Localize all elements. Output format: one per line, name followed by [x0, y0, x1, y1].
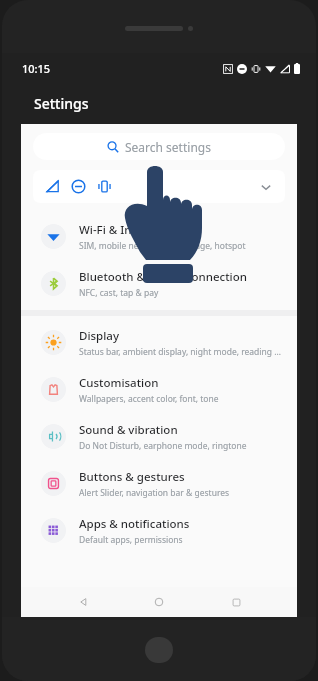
other: Airplane mode	[45, 179, 60, 194]
staticText: Buttons & gestures	[79, 469, 185, 485]
other: Vibrate	[97, 179, 112, 194]
other: Do not disturb	[71, 179, 86, 194]
button[interactable]: Airplane mode	[33, 170, 285, 203]
button[interactable]: Display	[21, 319, 297, 366]
button[interactable]: Wi-Fi & Internet	[21, 213, 297, 260]
button[interactable]: Back	[68, 587, 98, 617]
staticText: Settings	[34, 94, 89, 113]
staticText: Search settings	[125, 139, 211, 155]
button[interactable]: Buttons & gestures	[21, 460, 297, 507]
button[interactable]: Home	[144, 587, 174, 617]
staticText: 10:15	[22, 61, 51, 76]
staticText: Sound & vibration	[79, 422, 178, 438]
button[interactable]: Bluetooth & device connection	[21, 260, 297, 307]
staticText: Wi-Fi & Internet	[79, 222, 166, 238]
other: Expand	[259, 180, 273, 194]
button[interactable]: Apps & notifications	[21, 507, 297, 554]
staticText: Alert Slider, navigation bar & gestures	[79, 487, 230, 499]
button[interactable]: Recent apps	[221, 587, 251, 617]
staticText: Bluetooth & device connection	[79, 269, 247, 285]
button[interactable]: Search settings	[33, 133, 285, 160]
staticText: Default apps, permissions	[79, 534, 183, 546]
staticText: Do Not Disturb, earphone mode, ringtone	[79, 440, 247, 452]
button[interactable]: Sound & vibration	[21, 413, 297, 460]
staticText: Wallpapers, accent color, font, tone	[79, 393, 219, 405]
staticText: Display	[79, 328, 119, 344]
button[interactable]: Customisation	[21, 366, 297, 413]
staticText: Customisation	[79, 375, 159, 391]
staticText: Status bar, ambient display, night mode,…	[79, 346, 285, 358]
staticText: Apps & notifications	[79, 516, 190, 532]
staticText: NFC, cast, tap & pay	[79, 287, 159, 299]
staticText: SIM, mobile network, data usage, hotspot	[79, 240, 246, 252]
